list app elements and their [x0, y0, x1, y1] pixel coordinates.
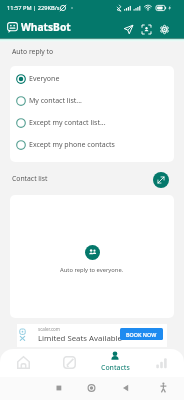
staticText: 11:57 PM | 229KB/s: [7, 4, 60, 12]
button[interactable]: Home: [0, 349, 46, 376]
button[interactable]: Settings: [157, 22, 171, 36]
button[interactable]: Expand contact list: [153, 172, 169, 188]
staticText: Auto reply to everyone.: [60, 266, 124, 274]
staticText: Limited Seats Available: [38, 333, 122, 344]
staticText: scaler.com: [38, 326, 60, 332]
staticText: My contact list...: [29, 96, 82, 106]
staticText: Auto reply to: [12, 47, 54, 56]
button[interactable]: Send: [121, 22, 135, 36]
button[interactable]: Templates: [46, 349, 92, 376]
button[interactable]: BOOK NOW: [120, 328, 163, 340]
staticText: WhatsBot: [21, 20, 71, 34]
staticText: Contacts: [101, 363, 130, 372]
button[interactable]: Scan: [139, 22, 153, 36]
button[interactable]: Except my phone contacts: [10, 134, 174, 156]
staticText: Except my phone contacts: [29, 140, 115, 150]
button[interactable]: Stats: [138, 349, 184, 376]
button[interactable]: Contacts: [92, 349, 138, 376]
staticText: Contact list: [12, 174, 48, 183]
staticText: Everyone: [29, 74, 60, 84]
button[interactable]: Everyone: [10, 68, 174, 90]
button[interactable]: My contact list...: [10, 90, 174, 112]
button[interactable]: Except my contact list...: [10, 112, 174, 134]
staticText: BOOK NOW: [126, 331, 157, 338]
staticText: Except my contact list...: [29, 118, 106, 128]
